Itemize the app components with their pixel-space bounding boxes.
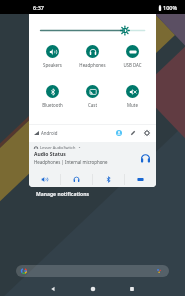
button[interactable]: Bluetooth — [32, 85, 72, 118]
button[interactable]: USB DAC — [124, 172, 156, 187]
button[interactable]: Search — [16, 265, 169, 277]
button[interactable]: Bluetooth — [92, 172, 124, 187]
button[interactable]: Settings — [144, 130, 150, 136]
button[interactable]: Speakers — [32, 45, 72, 78]
staticText: USB DAC — [123, 62, 142, 68]
button[interactable]: USB DAC — [112, 45, 152, 78]
staticText: 6:37 — [33, 4, 44, 11]
staticText: 100% — [163, 4, 178, 11]
staticText: Android — [41, 130, 58, 136]
staticText: Cast — [88, 102, 97, 108]
staticText: Lesser AudioSwitch — [40, 145, 76, 150]
staticText: Headphones | Internal microphone — [34, 159, 108, 165]
button[interactable]: Manage notifications — [36, 191, 89, 198]
button[interactable]: Recents — [126, 283, 138, 295]
button[interactable]: Headphones — [72, 45, 112, 78]
staticText: Audio Status — [34, 151, 66, 158]
staticText: Headphones — [79, 62, 106, 68]
staticText: Mute — [127, 102, 138, 108]
staticText: Speakers — [43, 62, 62, 68]
button[interactable]: Headphones — [60, 172, 92, 187]
button[interactable]: User — [116, 130, 122, 136]
button[interactable]: Brightness — [37, 24, 148, 37]
button[interactable]: Mute — [112, 85, 152, 118]
button[interactable]: Edit — [130, 130, 136, 136]
button[interactable]: Cast — [72, 85, 112, 118]
staticText: Bluetooth — [42, 102, 63, 108]
button[interactable]: Home — [87, 283, 99, 295]
button[interactable]: Speaker — [29, 172, 60, 187]
button[interactable]: Back — [47, 283, 59, 295]
staticText: Manage notifications — [36, 191, 89, 198]
